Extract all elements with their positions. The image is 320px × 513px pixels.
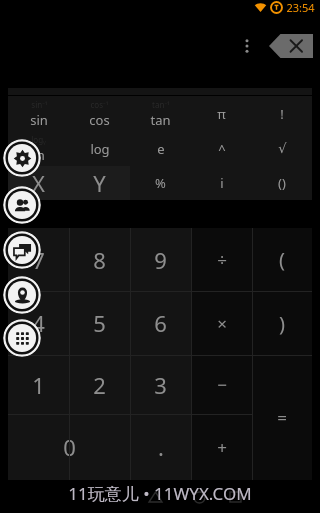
button[interactable]: Home: [186, 487, 212, 507]
button[interactable]: ×: [191, 291, 252, 355]
button[interactable]: (: [252, 228, 312, 291]
button[interactable]: Recents: [222, 487, 248, 507]
staticText: (: [279, 246, 285, 273]
staticText: ): [279, 310, 285, 337]
staticText: +: [217, 436, 227, 459]
staticText: sin⁻¹: [31, 99, 48, 110]
staticText: log: [90, 140, 110, 158]
button[interactable]: Y: [69, 166, 130, 200]
button[interactable]: ÷: [191, 228, 252, 291]
staticText: cos: [89, 111, 110, 129]
button[interactable]: 2: [69, 355, 130, 414]
staticText: 9: [154, 245, 167, 275]
button[interactable]: Apps: [3, 319, 41, 357]
staticText: sin: [30, 111, 48, 129]
button[interactable]: More options: [236, 34, 258, 58]
staticText: √: [278, 141, 287, 156]
button[interactable]: Delete: [269, 34, 313, 58]
button[interactable]: 5: [69, 291, 130, 355]
staticText: Y: [93, 168, 106, 198]
staticText: tan: [150, 111, 171, 129]
staticText: 4: [32, 308, 45, 338]
button[interactable]: Messages: [3, 231, 41, 269]
button[interactable]: Back: [142, 487, 168, 507]
button[interactable]: logᵧ: [8, 131, 69, 166]
staticText: (): [278, 174, 286, 192]
button[interactable]: ^: [191, 131, 252, 166]
button[interactable]: 3: [130, 355, 191, 414]
staticText: ÷: [217, 248, 227, 271]
staticText: −: [217, 373, 227, 396]
staticText: ln: [33, 146, 45, 164]
button[interactable]: log: [69, 131, 130, 166]
button[interactable]: e: [130, 131, 191, 166]
staticText: ^: [218, 140, 226, 158]
button[interactable]: 1: [8, 355, 69, 414]
button[interactable]: π: [191, 96, 252, 131]
staticText: ×: [217, 312, 227, 335]
button[interactable]: ): [252, 291, 312, 355]
button[interactable]: cos⁻¹: [69, 96, 130, 131]
staticText: X: [32, 168, 45, 198]
button[interactable]: !: [252, 96, 312, 131]
button[interactable]: +: [191, 414, 252, 480]
button[interactable]: Contacts: [3, 186, 41, 224]
staticText: 0: [63, 432, 76, 462]
button[interactable]: tan⁻¹: [130, 96, 191, 131]
button[interactable]: %: [130, 166, 191, 200]
button[interactable]: 8: [69, 228, 130, 291]
staticText: tan⁻¹: [152, 99, 170, 110]
staticText: 23:54: [286, 0, 315, 15]
staticText: 7: [32, 245, 45, 275]
staticText: 8: [93, 245, 106, 275]
staticText: 1: [32, 370, 45, 400]
button[interactable]: sin⁻¹: [8, 96, 69, 131]
staticText: 5: [93, 308, 106, 338]
staticText: 3: [154, 370, 167, 400]
button[interactable]: i: [191, 166, 252, 200]
staticText: 2: [93, 370, 106, 400]
button[interactable]: 9: [130, 228, 191, 291]
button[interactable]: 7: [8, 228, 69, 291]
button[interactable]: .: [130, 414, 191, 480]
staticText: =: [277, 406, 287, 429]
staticText: %: [155, 174, 166, 192]
button[interactable]: Location: [3, 276, 41, 314]
button[interactable]: 6: [130, 291, 191, 355]
button[interactable]: X: [8, 166, 69, 200]
staticText: i: [220, 174, 224, 192]
button[interactable]: Settings: [3, 139, 41, 177]
staticText: 11玩意儿 • 11WYX.COM: [68, 482, 252, 505]
button[interactable]: =: [252, 355, 312, 480]
button[interactable]: 0: [8, 414, 130, 480]
button[interactable]: (): [252, 166, 312, 200]
staticText: cos⁻¹: [90, 99, 109, 110]
staticText: e: [157, 140, 165, 158]
staticText: !: [280, 105, 284, 123]
staticText: π: [217, 105, 226, 123]
button[interactable]: −: [191, 355, 252, 414]
staticText: .: [158, 432, 164, 462]
button[interactable]: 4: [8, 291, 69, 355]
staticText: logᵧ: [31, 134, 46, 145]
staticText: 6: [154, 308, 167, 338]
button[interactable]: √: [252, 131, 312, 166]
